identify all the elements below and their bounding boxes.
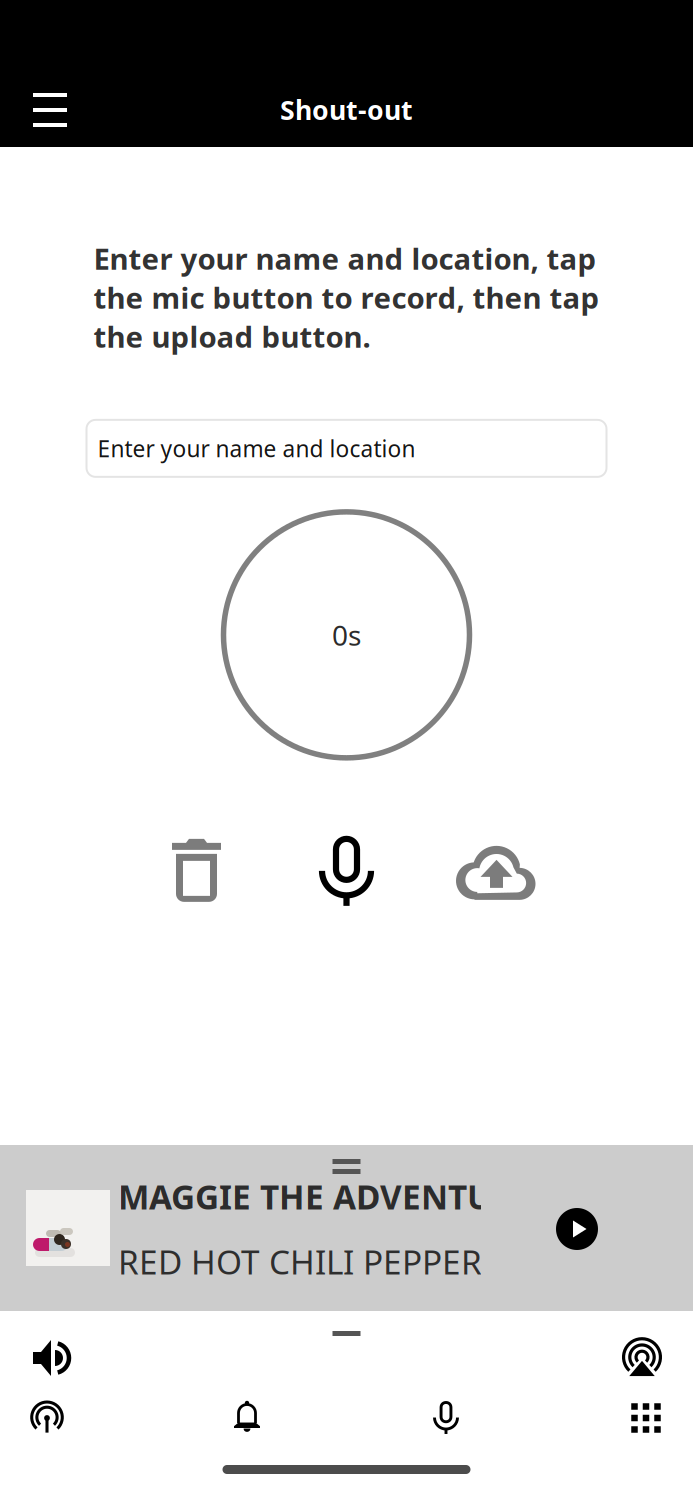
staticText: MAGGIE THE ADVENTURES OF RAIN	[118, 1174, 693, 1219]
staticText: Shout-out	[280, 92, 413, 127]
button[interactable]: Record	[271, 829, 421, 915]
button[interactable]: Delete recording	[121, 829, 271, 915]
staticText: Enter your name and location	[97, 433, 415, 463]
button[interactable]: Broadcast	[15, 1390, 79, 1446]
button[interactable]: Upload	[421, 829, 571, 915]
button[interactable]: Notifications	[215, 1387, 279, 1443]
staticText: RED HOT CHILI PEPPERS	[118, 1239, 500, 1284]
staticText: 0s	[332, 616, 361, 653]
button[interactable]: Volume	[20, 1329, 84, 1387]
button[interactable]: AirPlay	[610, 1329, 674, 1387]
button[interactable]: Apps	[614, 1390, 678, 1446]
button[interactable]: Microphone	[414, 1390, 478, 1446]
button[interactable]: Menu	[21, 81, 79, 139]
button[interactable]: Play	[545, 1197, 609, 1261]
button[interactable]: Enter your name and location	[86, 420, 606, 477]
staticText: Enter your name and location, tap the mi…	[93, 239, 599, 356]
